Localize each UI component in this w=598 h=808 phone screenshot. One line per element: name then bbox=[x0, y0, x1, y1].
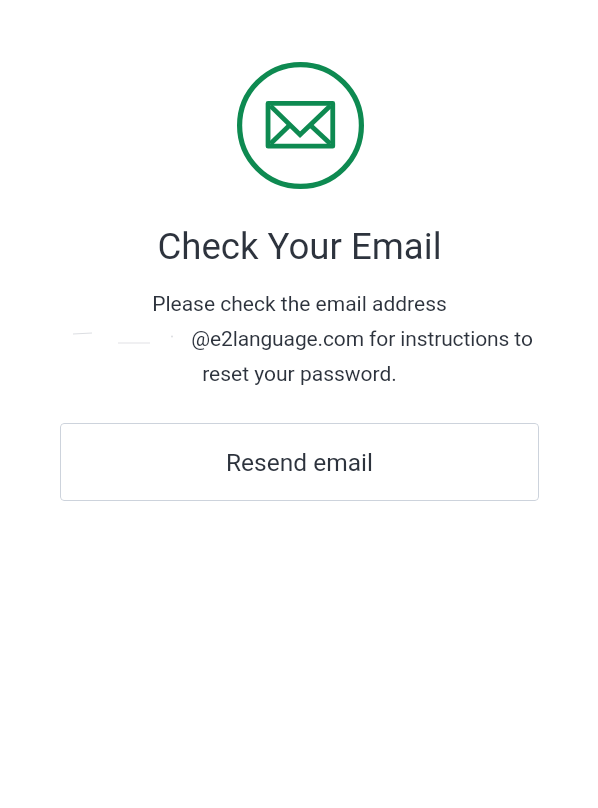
button[interactable]: Resend email bbox=[60, 423, 539, 501]
staticText: @e2language.com for instructions to bbox=[191, 327, 533, 352]
staticText: Check Your Email bbox=[157, 225, 442, 268]
other: Email sent bbox=[237, 62, 364, 189]
staticText: Please check the email address bbox=[152, 292, 447, 317]
staticText: reset your password. bbox=[202, 362, 397, 387]
staticText: Resend email bbox=[226, 448, 373, 477]
